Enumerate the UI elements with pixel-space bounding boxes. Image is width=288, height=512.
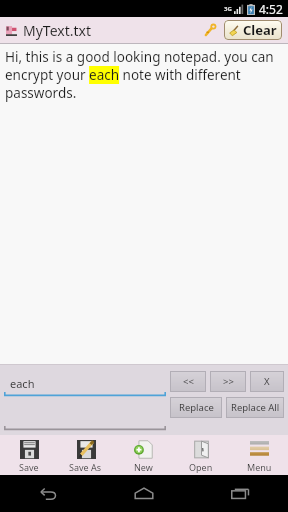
button[interactable]: each [4, 371, 166, 397]
staticText: Open [189, 461, 213, 473]
button[interactable]: New [114, 435, 172, 475]
button[interactable] [4, 407, 166, 431]
button[interactable]: Menu [230, 435, 288, 475]
button[interactable]: Save As [57, 435, 114, 475]
staticText: 3G [224, 5, 232, 13]
staticText: Menu [247, 461, 272, 473]
staticText: each [10, 376, 35, 391]
button[interactable]: Back [0, 475, 96, 512]
button[interactable]: Encrypt [198, 19, 220, 41]
button[interactable]: X [250, 371, 284, 392]
button[interactable]: Save [0, 435, 57, 475]
button[interactable]: Open [172, 435, 230, 475]
staticText: MyText.txt [23, 21, 91, 40]
button[interactable]: Home [96, 475, 192, 512]
staticText: X [264, 375, 270, 388]
staticText: Clear [243, 21, 277, 39]
staticText: Save As [69, 461, 102, 473]
button[interactable]: Replace All [226, 397, 284, 418]
staticText: >> [223, 375, 234, 388]
staticText: Replace [179, 401, 214, 414]
button[interactable]: Recent apps [192, 475, 288, 512]
staticText: New [134, 461, 153, 473]
staticText: Replace All [231, 401, 280, 414]
button[interactable]: Replace [170, 397, 222, 418]
button[interactable]: << [170, 371, 206, 392]
staticText: << [183, 375, 194, 388]
staticText: 4:52 [259, 1, 283, 17]
staticText: Hi, this is a good looking notepad. you … [5, 48, 283, 102]
staticText: Save [19, 461, 39, 473]
button[interactable]: >> [210, 371, 246, 392]
button[interactable]: Clear [224, 20, 282, 40]
